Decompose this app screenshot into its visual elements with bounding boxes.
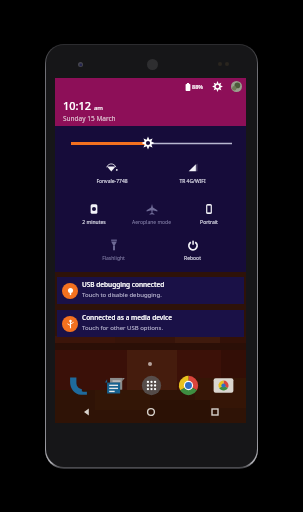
staticText: Touch to disable debugging. xyxy=(82,291,162,299)
button[interactable]: Flashlight xyxy=(85,239,141,265)
staticText: Sunday 15 March xyxy=(63,114,116,123)
button[interactable]: 2 minutes xyxy=(66,203,122,229)
button[interactable]: USB debugging connected xyxy=(57,277,244,304)
button[interactable]: Fonvale-7748 xyxy=(84,162,140,188)
button[interactable]: Connected as a media device xyxy=(57,310,244,337)
button[interactable]: User profile xyxy=(231,81,242,92)
staticText: USB debugging connected xyxy=(82,280,165,289)
staticText: am xyxy=(94,104,103,112)
button[interactable]: Brightness xyxy=(141,136,155,150)
button[interactable]: Apps xyxy=(138,372,164,398)
staticText: Flashlight xyxy=(102,255,125,262)
button[interactable]: Reboot xyxy=(164,239,220,265)
button[interactable]: Home xyxy=(137,402,165,422)
button[interactable]: Phone xyxy=(65,372,91,398)
button[interactable]: Aeroplane mode xyxy=(123,203,179,229)
staticText: 88% xyxy=(192,83,203,90)
staticText: 2 minutes xyxy=(82,219,106,226)
button[interactable]: Messages xyxy=(102,372,128,398)
staticText: TR 4G/WIFI xyxy=(179,178,206,185)
staticText: Connected as a media device xyxy=(82,313,172,322)
button[interactable]: Portrait xyxy=(181,203,237,229)
staticText: Aeroplane mode xyxy=(132,219,171,226)
button[interactable]: TR 4G/WIFI xyxy=(164,162,220,188)
button[interactable]: Recents xyxy=(201,402,229,422)
button[interactable]: Back xyxy=(73,402,101,422)
staticText: Touch for other USB options. xyxy=(82,324,164,332)
button[interactable]: Chrome xyxy=(175,372,201,398)
button[interactable]: Camera xyxy=(210,372,236,398)
staticText: Portrait xyxy=(200,219,218,226)
staticText: 10:12 xyxy=(63,98,92,113)
staticText: Fonvale-7748 xyxy=(96,178,128,185)
staticText: Reboot xyxy=(184,255,201,262)
button[interactable]: Settings xyxy=(212,81,223,92)
